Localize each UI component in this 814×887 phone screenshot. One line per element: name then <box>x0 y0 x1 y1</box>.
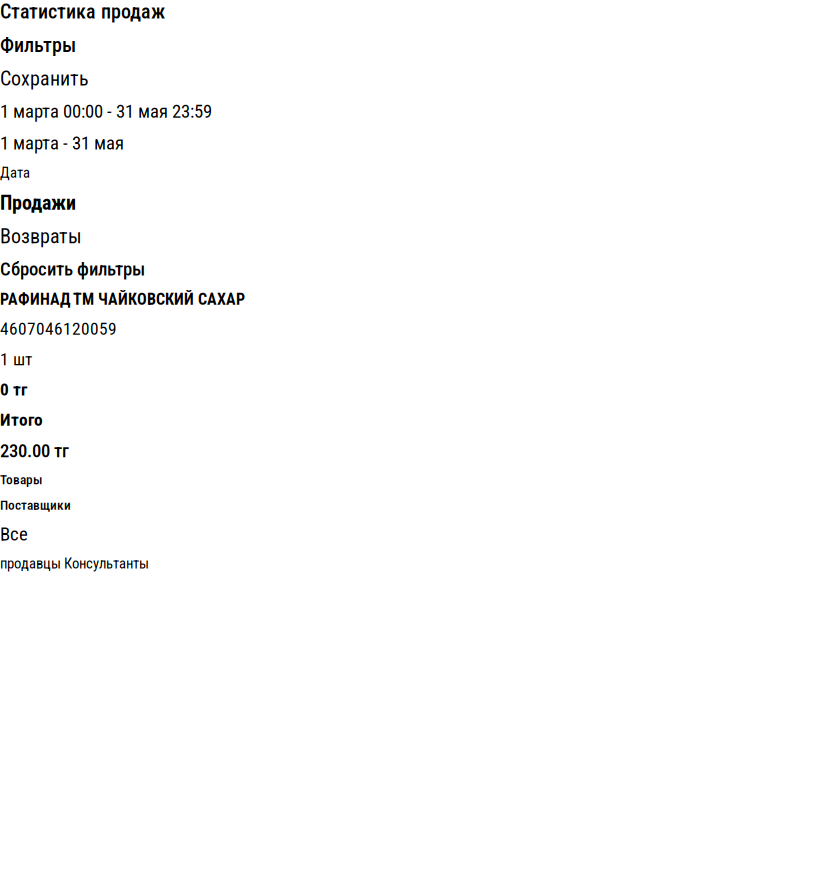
staticText: 1 марта 00:00 - 31 мая 23:59 <box>0 100 212 122</box>
staticText: 1 марта - 31 мая <box>0 132 124 154</box>
staticText: Статистика продаж <box>0 0 165 23</box>
staticText: 230.00 тг <box>0 440 69 462</box>
staticText: РАФИНАД ТМ ЧАЙКОВСКИЙ САХАР <box>0 290 245 309</box>
staticText: Возвраты <box>0 225 82 248</box>
staticText: Поставщики <box>0 497 71 513</box>
staticText: 1 шт <box>0 349 32 369</box>
staticText: Сбросить фильтры <box>0 258 145 280</box>
staticText: Все <box>0 523 28 545</box>
staticText: Дата <box>0 164 30 181</box>
staticText: продавцы Консультанты <box>0 555 149 572</box>
staticText: 4607046120059 <box>0 319 117 339</box>
staticText: Фильтры <box>0 33 76 57</box>
staticText: Сохранить <box>0 67 89 90</box>
staticText: Товары <box>0 472 42 487</box>
staticText: Итого <box>0 410 43 430</box>
staticText: Продажи <box>0 191 76 215</box>
staticText: 0 тг <box>0 379 27 400</box>
